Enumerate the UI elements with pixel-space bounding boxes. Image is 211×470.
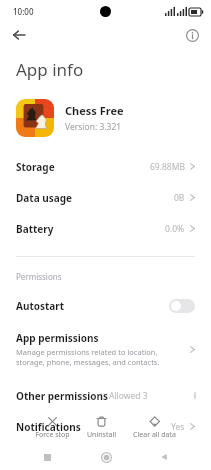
staticText: Storage <box>16 160 55 174</box>
button[interactable]: Autostart <box>0 292 211 320</box>
button[interactable]: Back <box>6 22 32 48</box>
staticText: Notifications <box>16 420 81 434</box>
staticText: Manage permissions related to location, … <box>16 347 184 367</box>
button[interactable]: App permissions <box>0 328 211 370</box>
button[interactable]: Battery <box>0 213 211 244</box>
staticText: 10:00 <box>13 6 34 17</box>
staticText: Battery <box>16 222 54 236</box>
staticText: Permissions <box>16 271 62 282</box>
staticText: Version: 3.321 <box>65 121 122 133</box>
button[interactable]: Data usage <box>0 182 211 213</box>
staticText: Yes <box>171 421 185 433</box>
button[interactable]: Home <box>94 445 118 469</box>
staticText: App info <box>16 58 84 81</box>
button[interactable]: Information <box>179 22 205 48</box>
button[interactable]: Autostart toggle, off <box>169 299 195 313</box>
button[interactable]: Recents <box>35 445 59 469</box>
staticText: Uninstall <box>87 430 116 440</box>
staticText: Chess Free <box>65 103 124 118</box>
button[interactable]: Other permissions <box>0 380 211 411</box>
staticText: Other permissions <box>16 389 109 403</box>
button[interactable]: Clear all data <box>129 413 180 442</box>
staticText: 69.88MB <box>150 161 185 173</box>
button[interactable]: Uninstall <box>83 413 120 442</box>
staticText: Allowed 3 permissions <box>109 390 195 402</box>
button[interactable]: Back <box>152 445 176 469</box>
staticText: App permissions <box>16 331 99 345</box>
button[interactable]: Storage <box>0 151 211 182</box>
staticText: Autostart <box>16 299 65 313</box>
staticText: 0B <box>174 192 185 204</box>
staticText: Data usage <box>16 191 73 205</box>
staticText: 0.0% <box>165 223 185 235</box>
staticText: Clear all data <box>133 430 176 440</box>
staticText: Force stop <box>35 430 70 440</box>
button[interactable]: Force stop <box>31 413 74 442</box>
button[interactable]: Notifications <box>0 411 211 442</box>
